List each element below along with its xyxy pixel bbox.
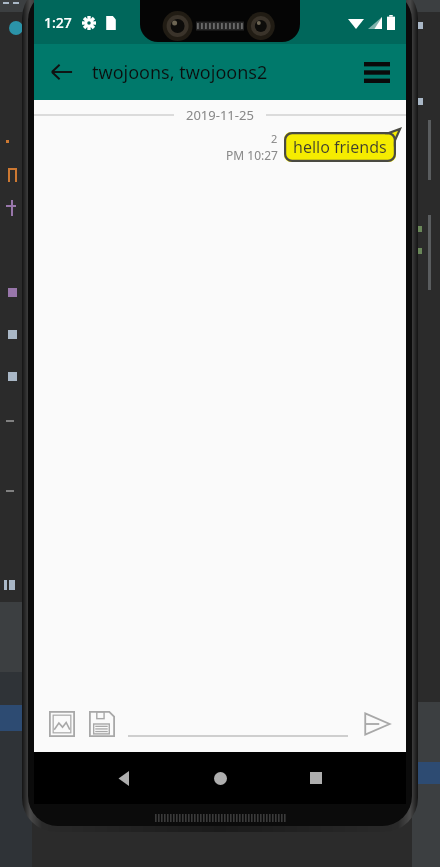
staticText: 2019-11-25	[186, 106, 254, 124]
staticText: hello friends	[293, 136, 387, 158]
button[interactable]: Back	[104, 758, 144, 798]
staticText: 2	[271, 131, 278, 146]
staticText: PM 10:27	[226, 147, 278, 163]
staticText: 1:27	[44, 13, 72, 32]
button[interactable]: Menu	[355, 50, 399, 94]
button[interactable]: Send	[358, 705, 396, 743]
button[interactable]: Attach image	[44, 706, 80, 742]
button[interactable]: hello friends	[284, 132, 396, 162]
button[interactable]	[128, 707, 348, 741]
button[interactable]: Back	[40, 50, 84, 94]
staticText: hello friends	[293, 136, 387, 158]
button[interactable]: Home	[200, 758, 240, 798]
staticText: twojoons, twojoons2	[92, 60, 268, 85]
button[interactable]: Save	[84, 706, 120, 742]
button[interactable]: Recents	[296, 758, 336, 798]
